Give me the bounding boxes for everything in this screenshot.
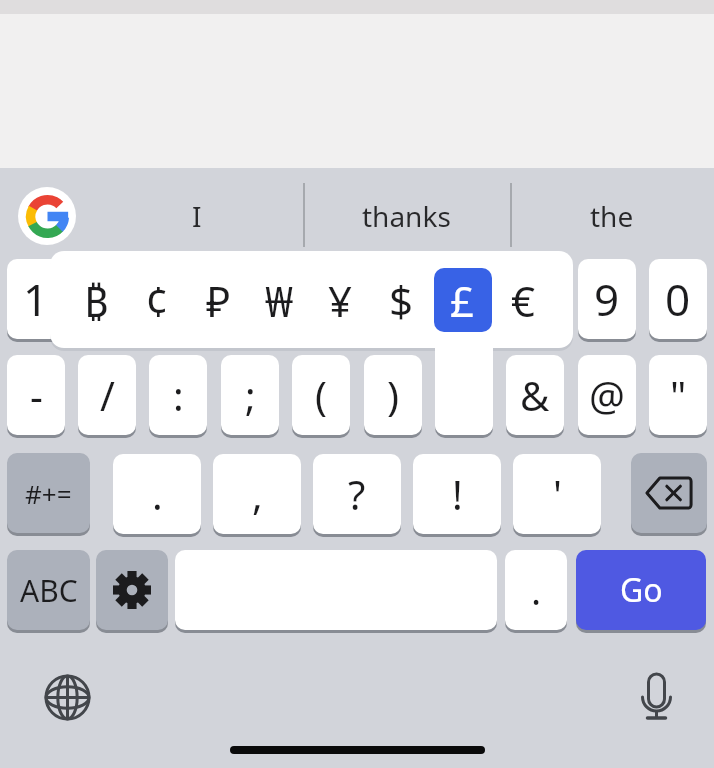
staticText: 6: [380, 269, 406, 329]
button[interactable]: ': [513, 454, 601, 534]
button[interactable]: 8: [506, 259, 564, 339]
button[interactable]: [640, 672, 673, 722]
staticText: .: [531, 564, 542, 616]
staticText: ₩: [265, 272, 294, 329]
button[interactable]: $: [371, 268, 431, 332]
staticText: 0: [665, 269, 691, 329]
staticText: £: [450, 272, 475, 329]
button[interactable]: the: [562, 186, 662, 246]
button[interactable]: ": [649, 355, 707, 435]
button[interactable]: £: [432, 268, 492, 332]
button[interactable]: .: [505, 550, 567, 630]
staticText: :: [173, 368, 184, 422]
staticText: I: [192, 197, 202, 235]
button[interactable]: ABC: [7, 550, 90, 630]
button[interactable]: [18, 187, 76, 245]
button[interactable]: 6: [364, 259, 422, 339]
button[interactable]: 9: [578, 259, 636, 339]
button[interactable]: 1: [7, 259, 65, 339]
staticText: 8: [522, 269, 548, 329]
staticText: 9: [594, 269, 620, 329]
staticText: ,: [252, 467, 263, 521]
button[interactable]: ¥: [310, 268, 370, 332]
button[interactable]: ₩: [249, 268, 309, 332]
button[interactable]: ?: [313, 454, 401, 534]
staticText: thanks: [362, 197, 451, 235]
staticText: 2: [94, 269, 120, 329]
button[interactable]: ): [364, 355, 422, 435]
staticText: #+=: [25, 476, 72, 511]
button[interactable]: 3: [149, 259, 207, 339]
button[interactable]: Go: [576, 550, 706, 630]
button[interactable]: #+=: [7, 453, 90, 533]
button[interactable]: thanks: [336, 186, 476, 246]
button[interactable]: €: [493, 268, 553, 332]
staticText: Go: [620, 568, 663, 612]
button[interactable]: ₿: [66, 268, 126, 332]
button[interactable]: @: [578, 355, 636, 435]
button[interactable]: .: [113, 454, 201, 534]
button[interactable]: [175, 550, 497, 630]
staticText: ABC: [20, 570, 78, 611]
staticText: ₿: [84, 272, 109, 329]
button[interactable]: (: [292, 355, 350, 435]
button[interactable]: !: [413, 454, 501, 534]
staticText: ;: [245, 368, 256, 422]
button[interactable]: 4: [221, 259, 279, 339]
staticText: ¢: [145, 272, 170, 329]
button[interactable]: [631, 453, 707, 533]
staticText: ¥: [328, 272, 353, 329]
button[interactable]: [435, 355, 493, 435]
button[interactable]: ,: [213, 454, 301, 534]
staticText: 7: [451, 269, 477, 329]
button[interactable]: [96, 550, 168, 630]
staticText: ": [670, 368, 687, 422]
staticText: @: [589, 368, 625, 422]
staticText: &: [520, 368, 550, 422]
staticText: 1: [23, 269, 49, 329]
button[interactable]: 5: [292, 259, 350, 339]
staticText: ): [387, 368, 399, 422]
staticText: -: [30, 368, 43, 422]
button[interactable]: &: [506, 355, 564, 435]
staticText: 5: [308, 269, 334, 329]
staticText: ₽: [206, 272, 231, 329]
staticText: (: [315, 368, 327, 422]
button[interactable]: ;: [221, 355, 279, 435]
staticText: the: [590, 197, 634, 235]
staticText: /: [100, 368, 115, 422]
button[interactable]: ¢: [127, 268, 187, 332]
staticText: !: [452, 467, 463, 521]
button[interactable]: ₽: [188, 268, 248, 332]
button[interactable]: /: [78, 355, 136, 435]
button[interactable]: [44, 674, 91, 721]
button[interactable]: 7: [435, 259, 493, 339]
button[interactable]: :: [149, 355, 207, 435]
staticText: €: [511, 272, 536, 329]
button[interactable]: 2: [78, 259, 136, 339]
button[interactable]: 0: [649, 259, 707, 339]
button[interactable]: I: [147, 186, 247, 246]
staticText: $: [389, 272, 414, 329]
staticText: ?: [348, 467, 366, 521]
staticText: ': [553, 467, 562, 521]
staticText: .: [152, 467, 163, 521]
button[interactable]: -: [7, 355, 65, 435]
